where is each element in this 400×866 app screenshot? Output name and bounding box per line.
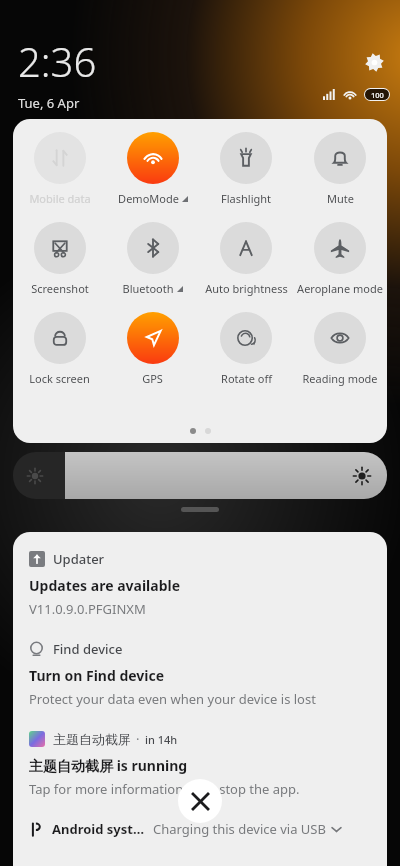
staticText: 主题自动截屏	[53, 731, 131, 747]
staticText: Mobile data	[29, 191, 91, 206]
staticText: Find device	[53, 640, 123, 658]
staticText: V11.0.9.0.PFGINXM	[29, 600, 146, 618]
staticText: 2:36	[18, 34, 97, 88]
staticText: Protect your data even when your device …	[29, 690, 316, 708]
button[interactable]: DemoMode	[106, 132, 199, 206]
staticText: Rotate off	[221, 371, 272, 386]
staticText: GPS	[142, 371, 163, 386]
button[interactable]: Aeroplane mode	[293, 222, 387, 296]
staticText: ·	[136, 730, 140, 748]
button[interactable]: Android syst…	[29, 820, 371, 838]
button[interactable]: Brightness	[65, 452, 387, 499]
staticText: Turn on Find device	[29, 666, 165, 685]
staticText: Updater	[53, 550, 105, 568]
staticText: Tue, 6 Apr	[18, 94, 80, 112]
button[interactable]: Clear all notifications	[178, 779, 222, 823]
staticText: Bluetooth	[122, 281, 174, 296]
button[interactable]: Find device	[29, 640, 123, 658]
staticText: Auto brightness	[205, 281, 288, 296]
staticText: Tap for more information or to stop the …	[29, 780, 300, 798]
button[interactable]: Screenshot	[13, 222, 106, 296]
button[interactable]: 主题自动截屏	[29, 730, 178, 748]
staticText: Charging this device via USB	[153, 820, 326, 838]
staticText: Flashlight	[221, 191, 271, 206]
staticText: 100	[371, 90, 384, 100]
staticText: Screenshot	[31, 281, 89, 296]
button[interactable]: Bluetooth	[106, 222, 199, 296]
button[interactable]: GPS	[106, 312, 199, 386]
staticText: DemoMode	[118, 191, 179, 206]
staticText: Android syst…	[52, 820, 145, 838]
button[interactable]: Settings	[357, 45, 391, 79]
button[interactable]: Updater	[29, 550, 105, 568]
button[interactable]: Flashlight	[199, 132, 293, 206]
staticText: Mute	[327, 191, 354, 206]
button[interactable]: Lock screen	[13, 312, 106, 386]
button[interactable]: Mute	[293, 132, 387, 206]
staticText: Updates are available	[29, 576, 181, 595]
button[interactable]: Reading mode	[293, 312, 387, 386]
button[interactable]: Mobile data	[13, 132, 106, 206]
staticText: in 14h	[145, 732, 178, 747]
button[interactable]: Auto brightness	[199, 222, 293, 296]
staticText: 主题自动截屏 is running	[29, 756, 188, 775]
staticText: Aeroplane mode	[297, 281, 383, 296]
button[interactable]	[181, 507, 219, 512]
staticText: Lock screen	[29, 371, 90, 386]
staticText: Reading mode	[302, 371, 378, 386]
button[interactable]: Rotate off	[199, 312, 293, 386]
